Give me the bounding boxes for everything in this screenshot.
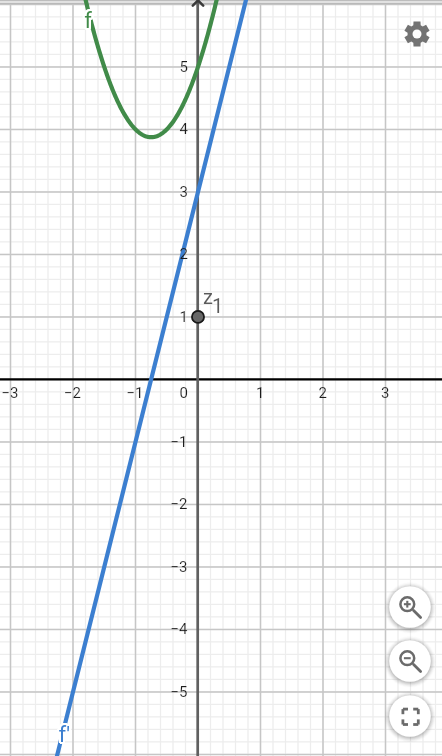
button[interactable]: Fit to screen	[385, 691, 435, 741]
button[interactable]: Zoom out	[385, 636, 435, 686]
button[interactable]: Zoom in	[385, 582, 435, 632]
button[interactable]: Settings	[397, 14, 437, 54]
